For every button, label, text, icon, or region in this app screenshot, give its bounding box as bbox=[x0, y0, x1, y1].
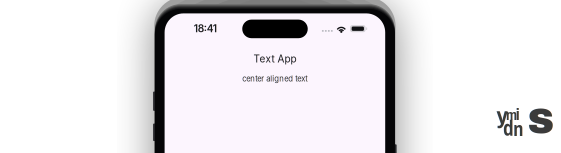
staticText: m bbox=[506, 104, 517, 125]
staticText: S bbox=[527, 101, 554, 141]
staticText: Text App bbox=[253, 53, 296, 65]
staticText: n bbox=[513, 115, 523, 142]
staticText: d bbox=[503, 114, 514, 142]
staticText: i bbox=[516, 102, 520, 125]
staticText: y bbox=[496, 98, 507, 132]
staticText: center aligned text bbox=[242, 74, 308, 83]
staticText: 18:41 bbox=[194, 22, 217, 35]
